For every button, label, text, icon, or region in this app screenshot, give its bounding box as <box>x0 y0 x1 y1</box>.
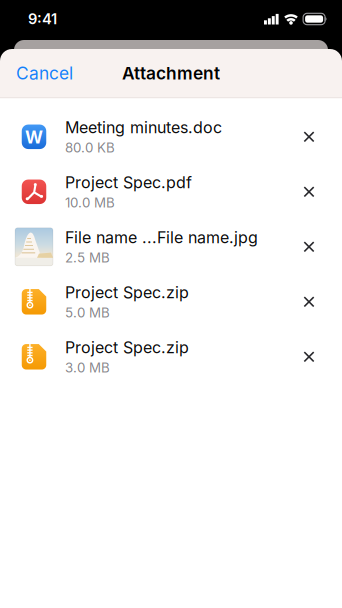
button[interactable]: Remove Project Spec.zip <box>294 274 324 329</box>
staticText: Project Spec.zip <box>65 283 189 302</box>
button[interactable]: Remove Project Spec.pdf <box>294 164 324 219</box>
staticText: 10.0 MB <box>65 195 115 211</box>
button[interactable]: Remove Meeting minutes.doc <box>294 109 324 164</box>
button[interactable]: Remove File name ...File name.jpg <box>294 219 324 274</box>
staticText: Meeting minutes.doc <box>65 118 222 137</box>
staticText: Cancel <box>16 63 73 83</box>
staticText: 9:41 <box>28 10 57 28</box>
button[interactable]: Project Spec.pdf <box>0 164 294 219</box>
button[interactable]: Project Spec.zip <box>0 329 294 384</box>
staticText: 2.5 MB <box>65 250 110 266</box>
staticText: 5.0 MB <box>65 305 110 321</box>
button[interactable]: File name ...File name.jpg <box>0 219 294 274</box>
staticText: Project Spec.pdf <box>65 173 192 192</box>
staticText: File name ...File name.jpg <box>65 228 258 247</box>
staticText: Attachment <box>122 63 220 83</box>
button[interactable]: Remove Project Spec.zip <box>294 329 324 384</box>
button[interactable]: W <box>0 109 294 164</box>
staticText: 3.0 MB <box>65 360 110 376</box>
staticText: W <box>25 127 43 147</box>
staticText: 80.0 KB <box>65 140 115 156</box>
button[interactable]: Project Spec.zip <box>0 274 294 329</box>
staticText: Project Spec.zip <box>65 338 189 357</box>
button[interactable]: Cancel <box>0 63 73 83</box>
